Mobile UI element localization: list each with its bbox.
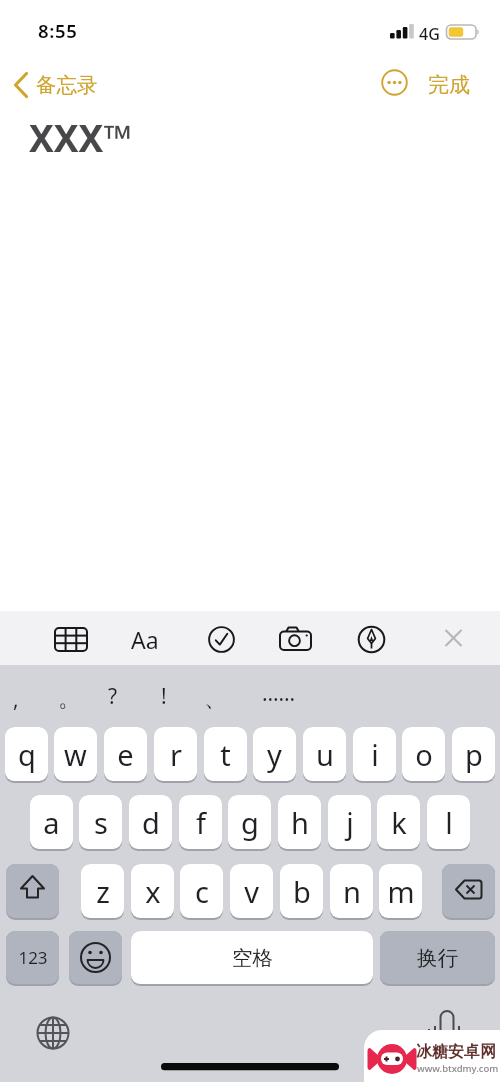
button[interactable]: p: [452, 727, 495, 783]
button[interactable]: [424, 1005, 470, 1045]
staticText: j: [346, 803, 354, 842]
button[interactable]: w: [54, 727, 97, 783]
staticText: 123: [18, 946, 48, 969]
button[interactable]: [69, 931, 122, 986]
button[interactable]: u: [303, 727, 346, 783]
button[interactable]: 空格: [131, 931, 373, 986]
staticText: 完成: [428, 72, 470, 98]
button[interactable]: y: [253, 727, 296, 783]
button[interactable]: ,: [13, 685, 19, 714]
button[interactable]: r: [154, 727, 197, 783]
button[interactable]: b: [280, 864, 323, 920]
staticText: ,: [13, 685, 19, 714]
button[interactable]: g: [228, 795, 271, 851]
button[interactable]: i: [353, 727, 396, 783]
staticText: 冰糖安卓网: [416, 1042, 496, 1062]
button[interactable]: j: [328, 795, 371, 851]
staticText: 换行: [417, 945, 458, 971]
staticText: www.btxdmy.com: [417, 1062, 499, 1075]
staticText: y: [267, 735, 282, 774]
button[interactable]: [380, 68, 410, 98]
staticText: Aa: [131, 624, 159, 655]
button[interactable]: t: [204, 727, 247, 783]
button[interactable]: c: [180, 864, 223, 920]
button[interactable]: m: [379, 864, 422, 920]
button[interactable]: q: [5, 727, 48, 783]
button[interactable]: x: [131, 864, 174, 920]
staticText: 空格: [232, 945, 273, 971]
staticText: 、: [204, 684, 227, 713]
staticText: w: [64, 735, 87, 774]
staticText: x: [145, 872, 161, 911]
staticText: 。: [58, 684, 81, 713]
button[interactable]: [440, 622, 476, 658]
staticText: d: [142, 803, 160, 842]
staticText: c: [195, 872, 209, 911]
staticText: i: [371, 735, 379, 774]
staticText: XXX™: [29, 112, 132, 162]
button[interactable]: f: [179, 795, 222, 851]
staticText: u: [316, 735, 334, 774]
button[interactable]: 。: [58, 684, 81, 713]
staticText: 8:55: [38, 18, 78, 43]
button[interactable]: 完成: [424, 66, 480, 98]
staticText: r: [170, 735, 182, 774]
button[interactable]: [30, 1010, 76, 1056]
staticText: ?: [108, 682, 118, 711]
staticText: v: [244, 872, 259, 911]
staticText: !: [161, 682, 167, 711]
button[interactable]: a: [30, 795, 73, 851]
button[interactable]: o: [402, 727, 445, 783]
button[interactable]: [6, 864, 59, 920]
staticText: t: [220, 735, 231, 774]
button[interactable]: [357, 622, 393, 658]
button[interactable]: ?: [108, 682, 118, 711]
button[interactable]: n: [330, 864, 373, 920]
button[interactable]: 换行: [380, 931, 495, 986]
button[interactable]: ……: [262, 679, 296, 708]
button[interactable]: [208, 622, 244, 658]
staticText: s: [94, 803, 108, 842]
staticText: g: [241, 803, 259, 842]
staticText: l: [445, 803, 453, 842]
button[interactable]: s: [79, 795, 122, 851]
staticText: n: [343, 872, 361, 911]
button[interactable]: [130, 622, 166, 658]
button[interactable]: !: [161, 682, 167, 711]
button[interactable]: [442, 864, 495, 920]
staticText: f: [196, 803, 206, 842]
button[interactable]: [55, 622, 91, 658]
button[interactable]: 123: [6, 931, 59, 986]
staticText: a: [43, 803, 60, 842]
button[interactable]: [278, 622, 314, 658]
staticText: b: [293, 872, 311, 911]
button[interactable]: 、: [204, 684, 227, 713]
staticText: p: [465, 735, 483, 774]
staticText: h: [291, 803, 309, 842]
button[interactable]: h: [278, 795, 321, 851]
staticText: ……: [262, 679, 296, 708]
button[interactable]: k: [377, 795, 420, 851]
button[interactable]: e: [104, 727, 147, 783]
staticText: e: [117, 735, 134, 774]
button[interactable]: z: [81, 864, 124, 920]
button[interactable]: l: [427, 795, 470, 851]
staticText: q: [18, 735, 36, 774]
staticText: o: [415, 735, 433, 774]
staticText: z: [96, 872, 110, 911]
staticText: 4G: [419, 23, 440, 45]
button[interactable]: d: [129, 795, 172, 851]
button[interactable]: v: [230, 864, 273, 920]
button[interactable]: [8, 66, 108, 100]
staticText: 备忘录: [36, 72, 98, 98]
staticText: k: [391, 803, 407, 842]
staticText: m: [387, 872, 415, 911]
